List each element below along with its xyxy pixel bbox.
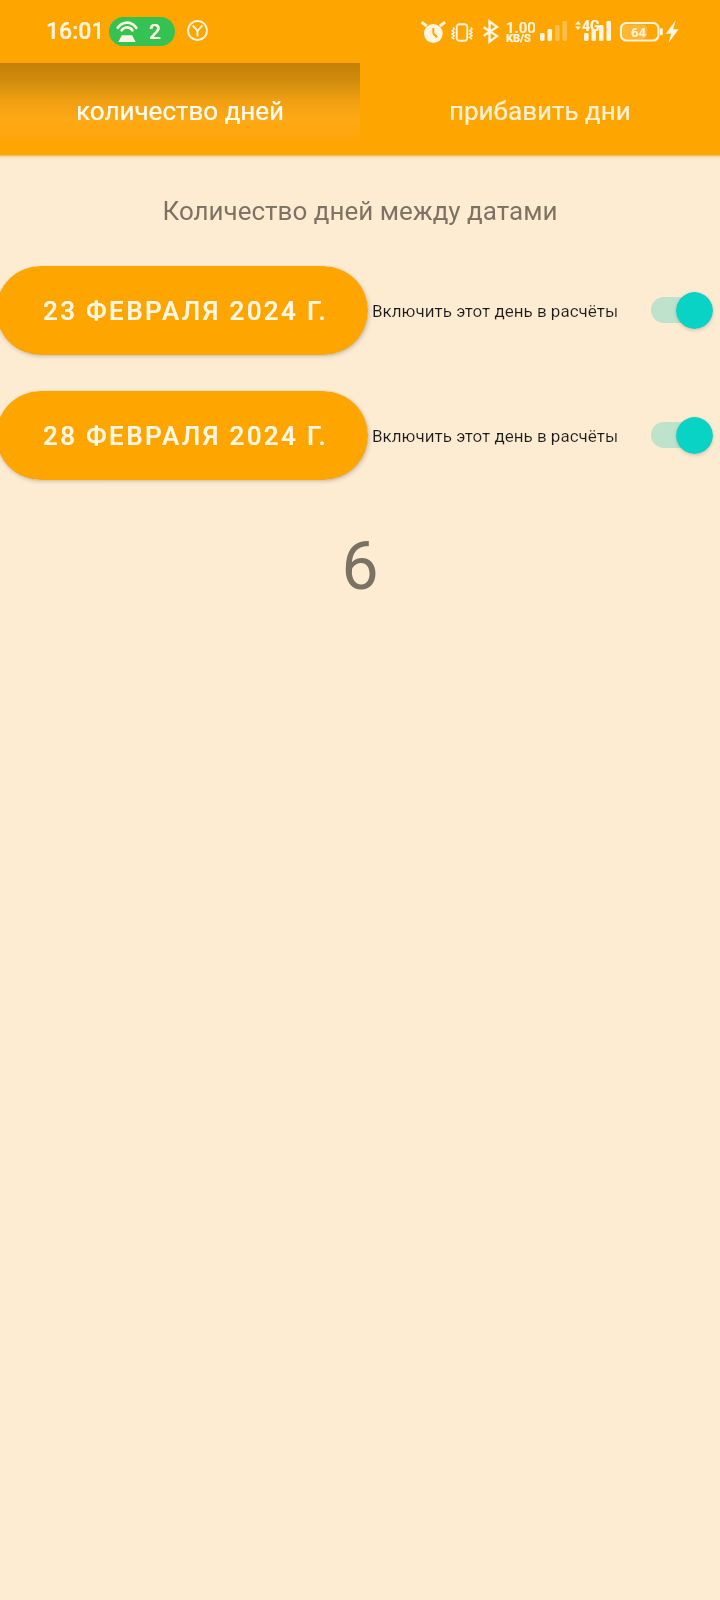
staticText: Количество дней между датами [0,196,720,226]
staticText: 6 [0,528,720,605]
button[interactable]: прибавить дни [360,63,720,155]
staticText: Включить этот день в расчёты [372,426,619,446]
staticText: 1.00 [506,19,536,37]
staticText: 28 ФЕВРАЛЯ 2024 Г. [43,421,329,451]
staticText: 64 [631,25,646,40]
staticText: 2 [149,20,161,45]
staticText: KB/S [506,32,531,45]
staticText: прибавить дни [449,96,631,126]
staticText: 16:01 [46,18,105,45]
button[interactable]: Включить этот день в расчёты [372,404,720,468]
button[interactable]: 28 ФЕВРАЛЯ 2024 Г. [0,391,368,480]
other: Включить этот день в расчёты [645,407,720,463]
staticText: 23 ФЕВРАЛЯ 2024 Г. [43,296,329,326]
staticText: количество дней [76,96,285,126]
staticText: Включить этот день в расчёты [372,301,619,321]
button[interactable]: количество дней [0,63,360,155]
staticText: 4G [582,18,600,34]
button[interactable]: 23 ФЕВРАЛЯ 2024 Г. [0,266,368,355]
other: Включить этот день в расчёты [645,282,720,338]
button[interactable]: Включить этот день в расчёты [372,279,720,343]
